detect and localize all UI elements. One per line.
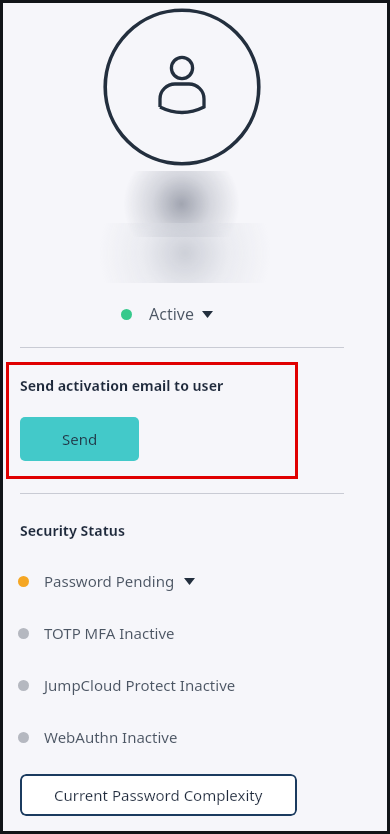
button[interactable]: User avatar [103, 8, 261, 166]
button[interactable]: WebAuthn Inactive [14, 725, 184, 749]
staticText: Active [149, 303, 194, 325]
staticText: TOTP MFA Inactive [44, 623, 175, 643]
button[interactable]: JumpCloud Protect Inactive [14, 673, 242, 697]
button[interactable]: Send [20, 417, 139, 461]
staticText: Send activation email to user [20, 376, 224, 395]
staticText: JumpCloud Protect Inactive [44, 675, 236, 695]
button[interactable]: TOTP MFA Inactive [14, 621, 181, 645]
staticText: Security Status [20, 521, 125, 540]
button[interactable]: Active [118, 300, 216, 328]
staticText: Send [62, 429, 98, 449]
staticText: Current Password Complexity [54, 785, 263, 805]
button[interactable]: Current Password Complexity [20, 774, 297, 816]
staticText: WebAuthn Inactive [44, 727, 178, 747]
staticText: Password Pending [44, 571, 175, 591]
button[interactable]: Password Pending [14, 569, 201, 593]
